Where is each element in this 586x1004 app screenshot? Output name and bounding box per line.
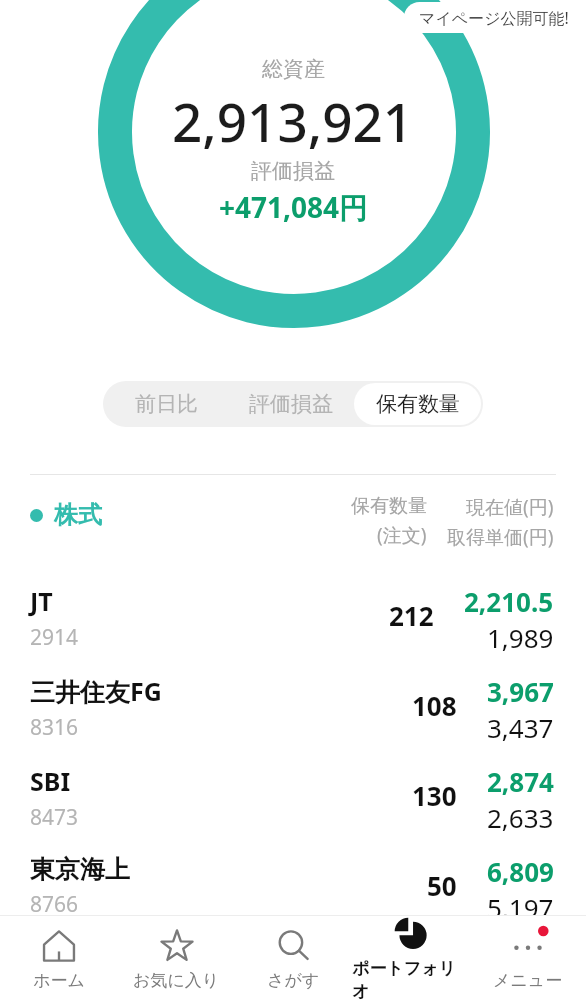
staticText: 株式 [54, 500, 102, 530]
button[interactable]: 評価損益 [230, 381, 352, 427]
button[interactable]: 株式 [30, 494, 102, 530]
staticText: +471,084円 [219, 188, 368, 226]
button[interactable]: 三井住友FG [0, 668, 586, 758]
staticText: 8473 [30, 803, 79, 832]
button[interactable]: 前日比 [103, 381, 230, 427]
button[interactable]: マイページ公開可能! [404, 2, 577, 33]
staticText: 8766 [30, 890, 79, 919]
button[interactable]: 東京海上 [0, 848, 586, 938]
staticText: JT [30, 584, 53, 618]
staticText: 三井住友FG [30, 674, 162, 708]
staticText: SBI [30, 764, 71, 798]
staticText: 130 [412, 778, 457, 813]
staticText: 2,210.5 [464, 584, 554, 619]
staticText: 前日比 [135, 391, 198, 417]
button[interactable]: メニュー [469, 915, 586, 1004]
staticText: (注文) [377, 522, 427, 548]
staticText: 3,967 [487, 674, 554, 709]
staticText: 2914 [30, 623, 79, 652]
staticText: ポートフォリオ [352, 958, 469, 1002]
staticText: ホーム [33, 970, 85, 991]
staticText: 108 [412, 688, 457, 723]
staticText: お気に入り [133, 970, 220, 991]
staticText: 東京海上 [30, 854, 130, 885]
staticText: 評価損益 [251, 158, 335, 184]
button[interactable]: ホーム [0, 915, 118, 1004]
staticText: 評価損益 [249, 391, 333, 417]
staticText: マイページ公開可能! [419, 7, 569, 29]
staticText: 212 [389, 598, 434, 633]
button[interactable]: 保有数量 [354, 383, 481, 425]
staticText: さがす [267, 970, 320, 991]
staticText: 8316 [30, 713, 79, 742]
button[interactable]: さがす [235, 915, 352, 1004]
staticText: 2,913,921 [172, 85, 414, 157]
button[interactable]: SBI [0, 758, 586, 848]
staticText: 現在値(円) [466, 494, 554, 520]
staticText: 1,989 [487, 620, 554, 655]
button[interactable]: JT [0, 578, 586, 668]
staticText: メニュー [493, 970, 563, 991]
staticText: 6,809 [487, 854, 554, 889]
staticText: 取得単価(円) [447, 524, 554, 550]
staticText: 保有数量 [351, 494, 427, 518]
staticText: 3,437 [487, 710, 554, 745]
button[interactable]: お気に入り [118, 915, 235, 1004]
staticText: 保有数量 [376, 391, 460, 417]
staticText: 5,197 [487, 890, 554, 925]
button[interactable]: ポートフォリオ [352, 915, 469, 1004]
staticText: 2,874 [487, 764, 554, 799]
staticText: 2,633 [487, 800, 554, 835]
staticText: 総資産 [262, 56, 325, 82]
staticText: 50 [427, 868, 457, 903]
